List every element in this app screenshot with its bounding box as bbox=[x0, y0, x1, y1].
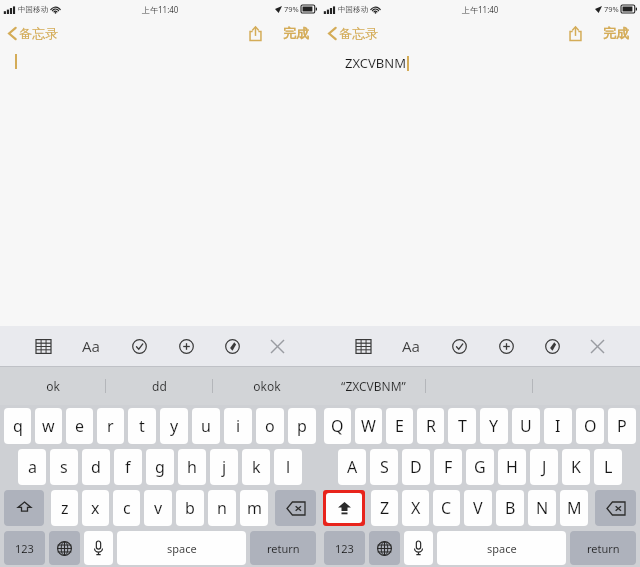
staticText: h bbox=[187, 456, 197, 478]
button[interactable]: Checklist bbox=[447, 334, 472, 359]
button[interactable]: Share bbox=[245, 22, 266, 45]
button[interactable]: 123 bbox=[324, 531, 365, 565]
button[interactable]: Draw bbox=[220, 334, 245, 359]
staticText: x bbox=[91, 497, 100, 519]
staticText: y bbox=[170, 415, 179, 437]
button[interactable]: W bbox=[355, 408, 382, 444]
button[interactable]: B bbox=[496, 490, 524, 526]
button[interactable]: f bbox=[114, 449, 142, 485]
button[interactable]: z bbox=[51, 490, 78, 526]
button[interactable]: S bbox=[370, 449, 398, 485]
button[interactable]: q bbox=[4, 408, 31, 444]
button[interactable]: 备忘录 bbox=[6, 22, 60, 44]
button[interactable]: ok bbox=[0, 367, 106, 405]
button[interactable]: p bbox=[288, 408, 316, 444]
button[interactable]: d bbox=[82, 449, 110, 485]
staticText: e bbox=[75, 415, 85, 437]
button[interactable]: Shift bbox=[326, 493, 362, 523]
button[interactable]: H bbox=[498, 449, 526, 485]
staticText: i bbox=[236, 415, 241, 437]
button[interactable]: U bbox=[512, 408, 540, 444]
button[interactable]: v bbox=[144, 490, 172, 526]
button[interactable]: Switch language bbox=[369, 531, 400, 565]
button[interactable]: dd bbox=[106, 367, 213, 405]
button[interactable]: space bbox=[437, 531, 566, 565]
button[interactable]: V bbox=[464, 490, 492, 526]
button[interactable]: F bbox=[434, 449, 462, 485]
button[interactable]: X bbox=[402, 490, 429, 526]
staticText: E bbox=[395, 415, 404, 437]
button[interactable]: O bbox=[576, 408, 604, 444]
button[interactable]: y bbox=[160, 408, 188, 444]
button[interactable]: return bbox=[250, 531, 316, 565]
staticText: A bbox=[347, 456, 358, 478]
button[interactable]: g bbox=[146, 449, 174, 485]
button[interactable]: k bbox=[242, 449, 270, 485]
button[interactable]: 123 bbox=[4, 531, 45, 565]
button[interactable]: okok bbox=[213, 367, 320, 405]
button[interactable]: Table bbox=[351, 334, 376, 359]
button[interactable]: T bbox=[448, 408, 476, 444]
button[interactable]: u bbox=[192, 408, 220, 444]
button[interactable]: a bbox=[18, 449, 46, 485]
button[interactable]: I bbox=[544, 408, 572, 444]
button[interactable]: Y bbox=[480, 408, 508, 444]
button[interactable]: Dictate bbox=[404, 531, 433, 565]
button[interactable]: M bbox=[560, 490, 588, 526]
button[interactable]: K bbox=[562, 449, 590, 485]
staticText: w bbox=[42, 415, 55, 437]
staticText: return bbox=[267, 541, 300, 556]
button[interactable]: Draw bbox=[540, 334, 565, 359]
button[interactable]: E bbox=[386, 408, 413, 444]
button[interactable]: Checklist bbox=[127, 334, 152, 359]
staticText: v bbox=[154, 497, 163, 519]
button[interactable]: r bbox=[97, 408, 124, 444]
button[interactable]: L bbox=[594, 449, 622, 485]
button[interactable]: w bbox=[35, 408, 62, 444]
button[interactable]: Share bbox=[565, 22, 586, 45]
button[interactable]: 完成 bbox=[600, 21, 632, 45]
button[interactable]: R bbox=[417, 408, 444, 444]
button[interactable]: m bbox=[240, 490, 268, 526]
button[interactable]: Table bbox=[31, 334, 56, 359]
button[interactable]: Close keyboard bbox=[586, 335, 609, 358]
button[interactable]: o bbox=[256, 408, 284, 444]
button[interactable]: D bbox=[402, 449, 430, 485]
button[interactable]: C bbox=[433, 490, 460, 526]
button[interactable]: Add bbox=[174, 334, 199, 359]
button[interactable]: Format bbox=[77, 331, 106, 361]
button[interactable]: j bbox=[210, 449, 238, 485]
button[interactable]: b bbox=[176, 490, 204, 526]
button[interactable]: Z bbox=[371, 490, 398, 526]
button[interactable]: l bbox=[274, 449, 302, 485]
button[interactable]: G bbox=[466, 449, 494, 485]
button[interactable]: Shift bbox=[4, 490, 44, 526]
button[interactable]: space bbox=[117, 531, 246, 565]
button[interactable]: e bbox=[66, 408, 93, 444]
button[interactable]: J bbox=[530, 449, 558, 485]
button[interactable]: h bbox=[178, 449, 206, 485]
button[interactable]: Switch language bbox=[49, 531, 80, 565]
button[interactable]: N bbox=[528, 490, 556, 526]
button[interactable]: “ZXCVBNM” bbox=[320, 367, 426, 405]
button[interactable]: i bbox=[224, 408, 252, 444]
button[interactable]: t bbox=[128, 408, 156, 444]
button[interactable]: Close keyboard bbox=[266, 335, 289, 358]
button[interactable]: Format bbox=[397, 331, 426, 361]
button[interactable]: 备忘录 bbox=[326, 22, 380, 44]
button[interactable]: A bbox=[338, 449, 366, 485]
button[interactable]: Dictate bbox=[84, 531, 113, 565]
button[interactable]: Add bbox=[494, 334, 519, 359]
button[interactable]: n bbox=[208, 490, 236, 526]
button[interactable]: P bbox=[608, 408, 636, 444]
button[interactable]: Backspace bbox=[595, 490, 636, 526]
button[interactable]: return bbox=[570, 531, 636, 565]
button[interactable]: c bbox=[113, 490, 140, 526]
button[interactable]: Backspace bbox=[275, 490, 316, 526]
button[interactable]: s bbox=[50, 449, 78, 485]
button[interactable]: Q bbox=[324, 408, 351, 444]
button[interactable]: x bbox=[82, 490, 109, 526]
button[interactable]: 完成 bbox=[280, 21, 312, 45]
